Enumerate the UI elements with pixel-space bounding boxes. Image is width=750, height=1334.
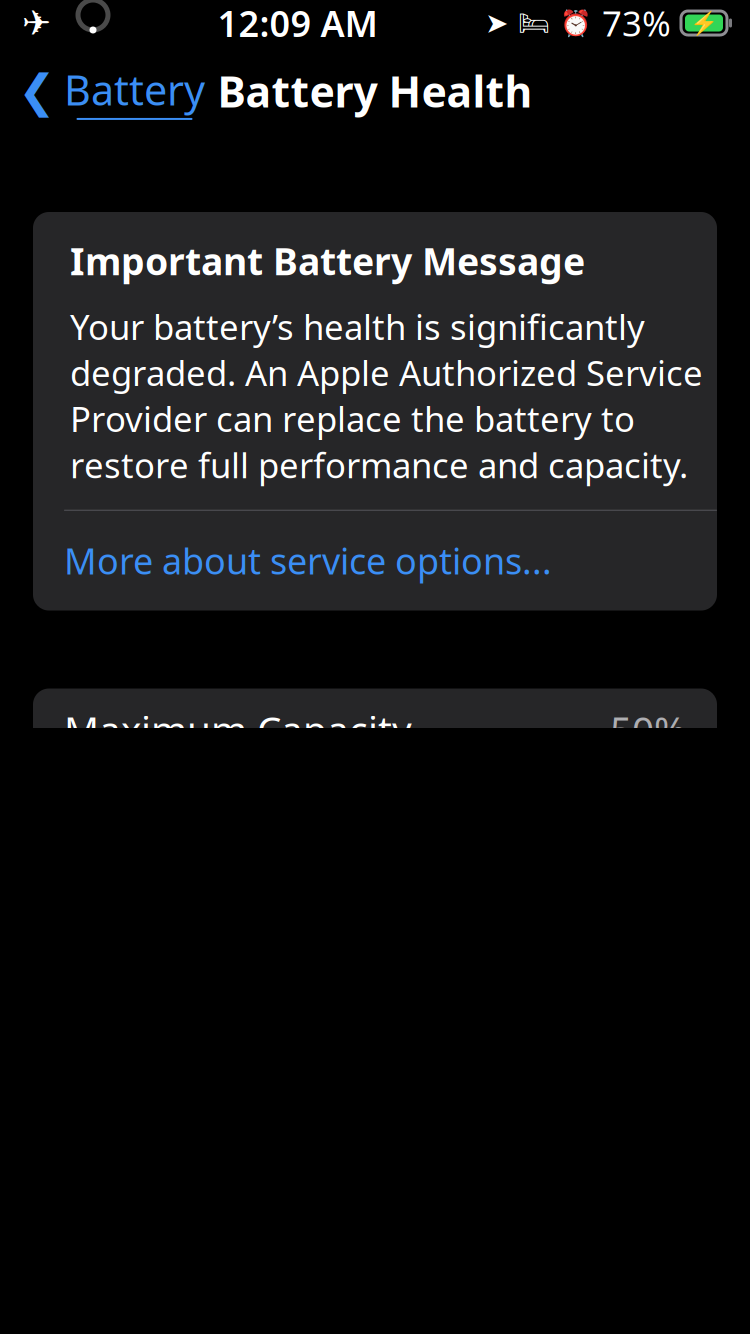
staticText: More about service options... (64, 537, 552, 584)
staticText: 73% (602, 0, 671, 46)
staticText: 🛏 (518, 8, 550, 37)
staticText: Your battery’s health is significantly d… (70, 304, 703, 488)
button[interactable]: ❮ (0, 56, 205, 126)
staticText: ➤ (485, 7, 508, 39)
staticText: Battery Health (217, 63, 532, 119)
staticText: ✈ (22, 3, 51, 43)
staticText: Maximum Capacity (64, 704, 412, 755)
staticText: Battery (64, 62, 205, 117)
staticText: ⏰ (560, 8, 592, 37)
staticText: 50% (610, 704, 686, 755)
staticText: Important Battery Message (70, 236, 585, 286)
staticText: ⚡ (690, 10, 718, 36)
staticText: ❮ (18, 65, 56, 117)
button[interactable]: More about service options... (33, 511, 552, 610)
staticText: 12:09 AM (217, 0, 377, 47)
